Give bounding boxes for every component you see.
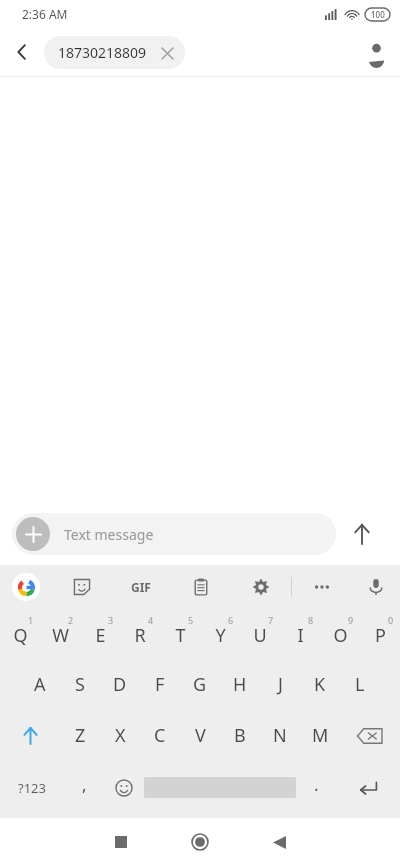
button[interactable]: Y [200,608,240,658]
button[interactable]: I [280,608,320,658]
staticText: J [278,672,283,697]
staticText: R [134,623,146,648]
button[interactable]: S [60,658,100,710]
button[interactable]: M [300,710,340,761]
button[interactable]: Google [0,565,52,608]
button[interactable]: O [320,608,360,658]
staticText: 5 [188,614,194,626]
button[interactable]: Attach [12,513,336,555]
staticText: 7 [268,614,274,626]
button[interactable]: Settings [231,565,291,608]
button[interactable]: Z [60,710,100,761]
staticText: B [234,723,246,748]
button[interactable]: X [100,710,140,761]
button[interactable]: Space [144,761,296,814]
button[interactable]: Voice input [352,565,400,608]
staticText: X [115,723,126,748]
button[interactable]: C [140,710,180,761]
staticText: 100 [371,9,385,20]
staticText: E [95,623,106,648]
button[interactable]: Remove recipient [157,43,177,63]
staticText: H [233,672,247,697]
button[interactable]: Recent apps [85,818,157,866]
staticText: 0 [388,614,394,626]
staticText: 8 [308,614,314,626]
staticText: M [312,723,329,748]
staticText: 18730218809 [58,43,147,62]
button[interactable]: Back [0,30,44,74]
staticText: ?123 [18,779,46,797]
button[interactable]: J [260,658,300,710]
button[interactable]: Emoji [104,761,144,814]
button[interactable]: ?123 [0,761,64,814]
button[interactable]: W [40,608,80,658]
button[interactable]: Clipboard [171,565,231,608]
button[interactable]: U [240,608,280,658]
staticText: P [375,623,386,648]
button[interactable]: 18730218809 [44,36,185,69]
button[interactable]: E [80,608,120,658]
staticText: 9 [348,614,354,626]
button[interactable]: A [20,658,60,710]
button[interactable]: , [64,761,104,814]
button[interactable]: G [180,658,220,710]
button[interactable]: More options [292,565,352,608]
staticText: U [253,623,267,648]
staticText: T [175,623,186,648]
staticText: I [297,623,304,648]
staticText: GIF [131,579,151,595]
staticText: W [52,623,69,648]
button[interactable]: B [220,710,260,761]
staticText: V [195,723,206,748]
button[interactable]: N [260,710,300,761]
staticText: Text message [64,525,154,544]
staticText: L [355,672,365,697]
staticText: 2 [68,614,74,626]
button[interactable]: Q [0,608,40,658]
staticText: 2:36 AM [22,6,68,22]
staticText: 4 [148,614,154,626]
button[interactable]: Enter [336,761,400,814]
button[interactable]: D [100,658,140,710]
button[interactable]: V [180,710,220,761]
staticText: 1 [28,614,34,626]
staticText: D [113,672,127,697]
staticText: Q [13,623,28,648]
button[interactable]: GIF [111,565,171,608]
staticText: 3 [108,614,114,626]
button[interactable]: Back [243,818,315,866]
button[interactable]: . [296,761,336,814]
staticText: Z [75,723,86,748]
button[interactable]: Attach [16,517,50,551]
staticText: O [333,623,348,648]
staticText: G [193,672,207,697]
button[interactable]: K [300,658,340,710]
button[interactable]: Stickers [52,565,111,608]
staticText: N [273,723,287,748]
button[interactable]: Shift [0,710,60,761]
staticText: 6 [228,614,234,626]
staticText: . [314,773,319,796]
button[interactable]: H [220,658,260,710]
staticText: K [314,672,326,697]
button[interactable]: Backspace [340,710,400,761]
staticText: S [75,672,85,697]
button[interactable]: F [140,658,180,710]
staticText: Y [215,623,226,648]
button[interactable]: P [360,608,400,658]
staticText: , [82,773,87,796]
button[interactable]: Home [157,818,243,866]
button[interactable]: L [340,658,380,710]
button[interactable]: Contacts [352,28,400,76]
button[interactable]: R [120,608,160,658]
staticText: F [155,672,165,697]
staticText: C [154,723,166,748]
button[interactable]: Send [336,508,388,560]
button[interactable]: T [160,608,200,658]
staticText: A [34,672,46,697]
